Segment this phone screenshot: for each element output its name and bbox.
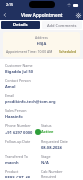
- staticText: Transfered To: [5, 154, 28, 159]
- staticText: Active: [41, 129, 54, 134]
- button[interactable]: Details: [1, 21, 40, 29]
- staticText: Phone Number: [5, 123, 31, 128]
- staticText: Cab Number Required: [41, 169, 78, 178]
- staticText: Customer Name: [5, 63, 33, 68]
- staticText: Sales Person: [5, 108, 27, 113]
- staticText: Amol: [5, 84, 16, 89]
- staticText: Details: [13, 22, 28, 28]
- other: WhatsApp: [35, 129, 41, 135]
- staticText: Scheduled: [59, 49, 77, 54]
- staticText: BERS_CRT_48: [5, 175, 31, 178]
- staticText: +91 6297 0000: [5, 130, 33, 135]
- staticText: 08-08-2024: [41, 145, 62, 150]
- staticText: prodikinfo-tech@tom.org: [5, 99, 56, 104]
- staticText: Add Comments: [47, 23, 77, 28]
- staticText: Requested Date: [41, 139, 68, 144]
- staticText: macnh: [5, 160, 19, 165]
- staticText: Address: [6, 35, 77, 40]
- button[interactable]: Add Comments: [42, 21, 82, 29]
- staticText: Bigadda Jul 50: [5, 69, 34, 74]
- staticText: Email: [5, 93, 15, 98]
- staticText: Status: [41, 123, 52, 128]
- button[interactable]: Settings: [73, 10, 83, 20]
- staticText: View Appointment: [21, 12, 63, 18]
- staticText: Appointment Time: 10:00 AM: [6, 49, 53, 54]
- staticText: Stage: [41, 154, 51, 159]
- staticText: Haasinfo: [5, 114, 23, 119]
- staticText: Follow-up Date: [5, 139, 31, 144]
- staticText: Contact Person: [5, 78, 31, 83]
- staticText: Product: [5, 169, 19, 174]
- staticText: N/A: [41, 160, 49, 165]
- staticText: 2:15: [6, 2, 14, 7]
- button[interactable]: Back: [0, 10, 10, 20]
- staticText: HSJA: [6, 41, 77, 46]
